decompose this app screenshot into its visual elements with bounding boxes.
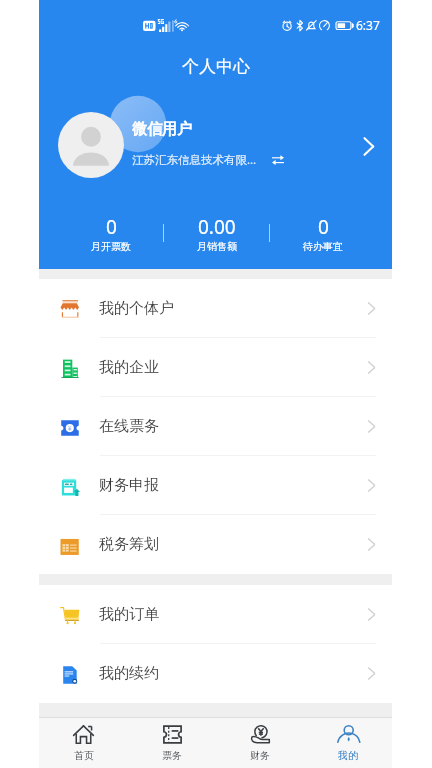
staticText: 0 — [106, 214, 117, 240]
staticText: 6:37 — [356, 17, 380, 33]
staticText: 我的续约 — [99, 664, 159, 683]
staticText: 江苏汇东信息技术有限… — [132, 152, 257, 168]
button[interactable]: 我的续约 — [39, 644, 392, 703]
staticText: 我的企业 — [99, 358, 159, 377]
button[interactable]: 我的 — [304, 718, 392, 768]
staticText: 微信用户 — [132, 120, 192, 139]
button[interactable]: 我的订单 — [39, 585, 392, 644]
button[interactable]: 票务 — [128, 718, 216, 768]
staticText: 税务筹划 — [99, 535, 159, 554]
staticText: 在线票务 — [99, 417, 159, 436]
staticText: 0.00 — [198, 214, 236, 240]
staticText: 财务 — [250, 749, 270, 762]
other: Switch company — [272, 155, 284, 165]
staticText: 待办事宜 — [303, 240, 343, 253]
button[interactable]: 税务筹划 — [39, 515, 392, 574]
button[interactable]: 0 — [58, 214, 164, 254]
button[interactable]: 0.00 — [164, 214, 270, 254]
staticText: 月开票数 — [91, 240, 131, 253]
button[interactable]: 我的个体户 — [39, 279, 392, 338]
staticText: 月销售额 — [197, 240, 237, 253]
staticText: 个人中心 — [182, 56, 250, 77]
staticText: 票务 — [162, 749, 182, 762]
button[interactable]: 首页 — [39, 718, 128, 768]
staticText: 我的订单 — [99, 605, 159, 624]
staticText: 0 — [318, 214, 329, 240]
staticText: 首页 — [74, 749, 94, 762]
button[interactable]: 0 — [270, 214, 376, 254]
staticText: 财务申报 — [99, 476, 159, 495]
button[interactable]: 财务 — [216, 718, 304, 768]
button[interactable]: 财务申报 — [39, 456, 392, 515]
button[interactable]: 微信用户 — [39, 112, 392, 178]
button[interactable]: 我的企业 — [39, 338, 392, 397]
button[interactable]: 在线票务 — [39, 397, 392, 456]
staticText: 我的 — [338, 749, 358, 762]
other: Profile details — [362, 137, 376, 156]
staticText: 我的个体户 — [99, 299, 174, 318]
